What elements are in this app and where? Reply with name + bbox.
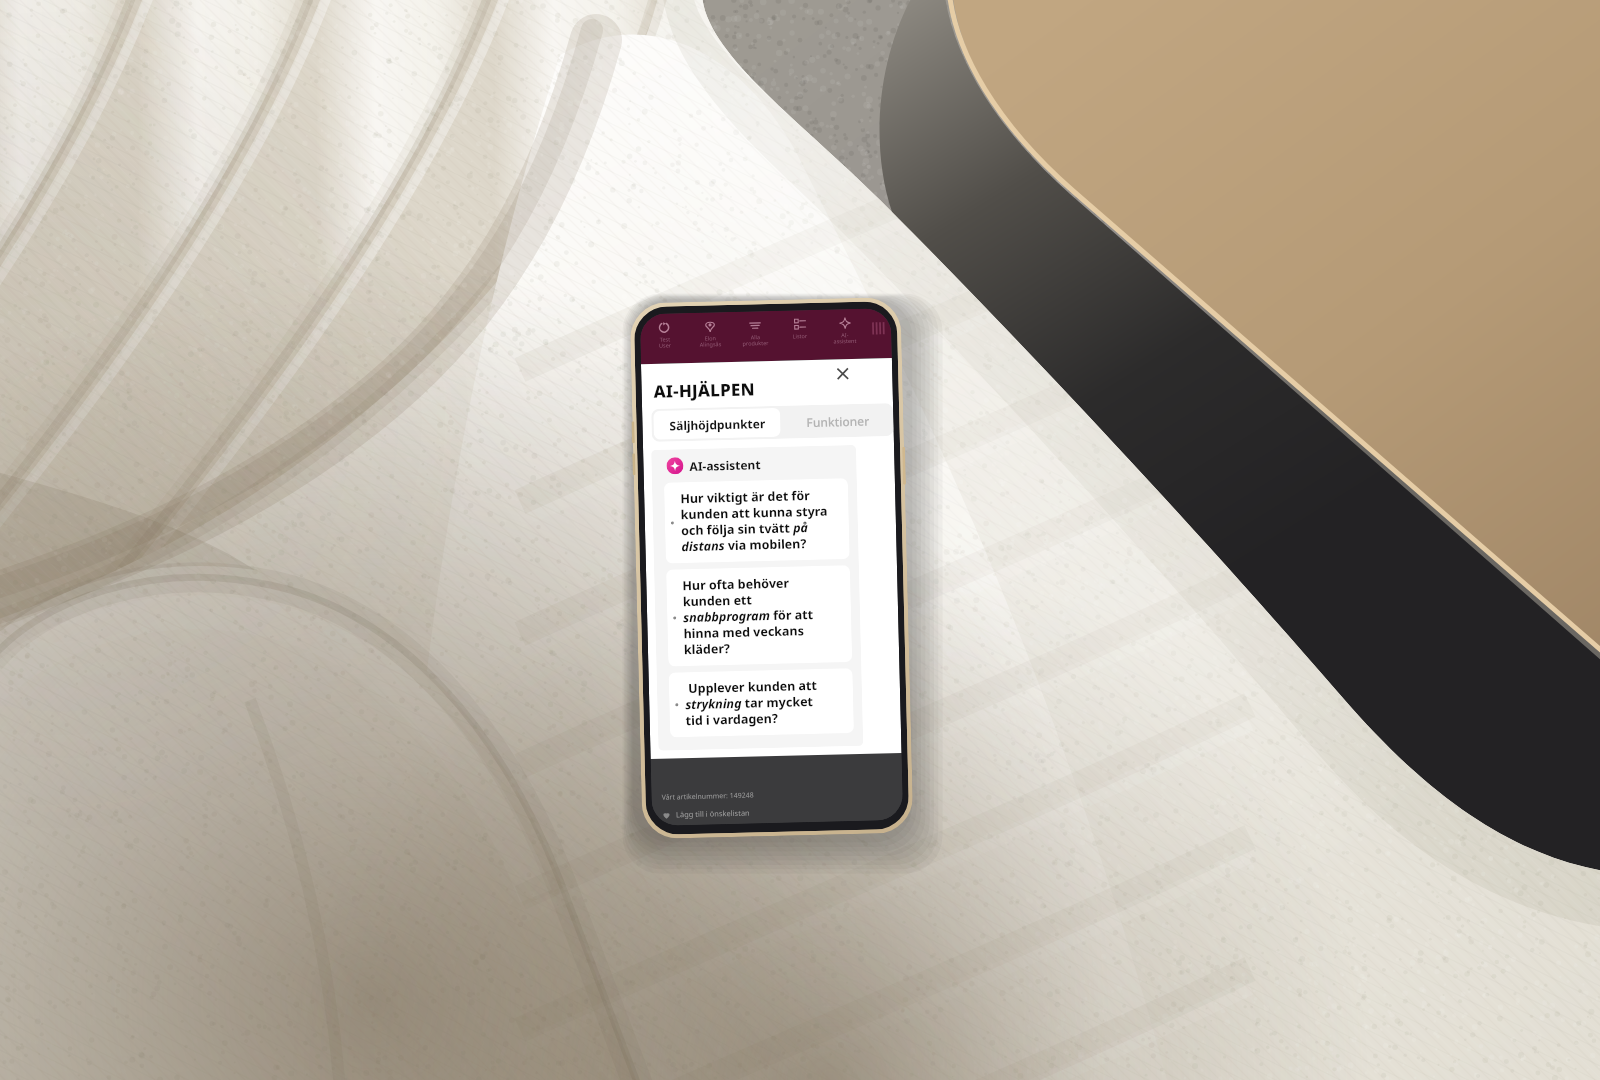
staticText: AI-HJÄLPEN (653, 377, 756, 403)
button[interactable]: Hur viktigt är det för kunden att kunna … (664, 478, 850, 564)
staticText: Alla produkter (742, 333, 769, 348)
staticText: Hur viktigt är det för kunden att kunna … (680, 487, 829, 555)
button[interactable]: Säljhöjdpunkter (653, 408, 781, 440)
button[interactable]: Elon (871, 320, 887, 336)
staticText: Vårt artikelnummer: 149248 (661, 790, 755, 803)
button[interactable]: Lägg till i önskelistan (652, 801, 903, 826)
button[interactable]: Funktioner (782, 403, 894, 439)
staticText: Lägg till i önskelistan (676, 808, 750, 819)
staticText: Test User (658, 335, 672, 350)
staticText: AI-assistent (689, 456, 762, 474)
button[interactable]: AI- assistent (822, 317, 868, 360)
staticText: Säljhöjdpunkter (669, 415, 766, 433)
button[interactable]: Stäng (835, 366, 850, 381)
button[interactable]: Listor (777, 318, 823, 361)
staticText: Upplever kunden att strykning tar mycket… (685, 677, 818, 729)
button[interactable]: Elon Alingsås (687, 320, 733, 363)
staticText: Hur ofta behöver kunden ett snabbprogram… (682, 574, 814, 658)
staticText: Listor (792, 332, 807, 339)
staticText: Funktioner (806, 413, 870, 430)
button[interactable]: Test User (641, 321, 688, 364)
button[interactable]: Hur ofta behöver kunden ett snabbprogram… (666, 565, 852, 667)
button[interactable]: Alla produkter (732, 319, 778, 362)
button[interactable]: Upplever kunden att strykning tar mycket… (668, 668, 854, 738)
staticText: Elon Alingsås (699, 334, 722, 349)
staticText: AI- assistent (833, 331, 856, 345)
